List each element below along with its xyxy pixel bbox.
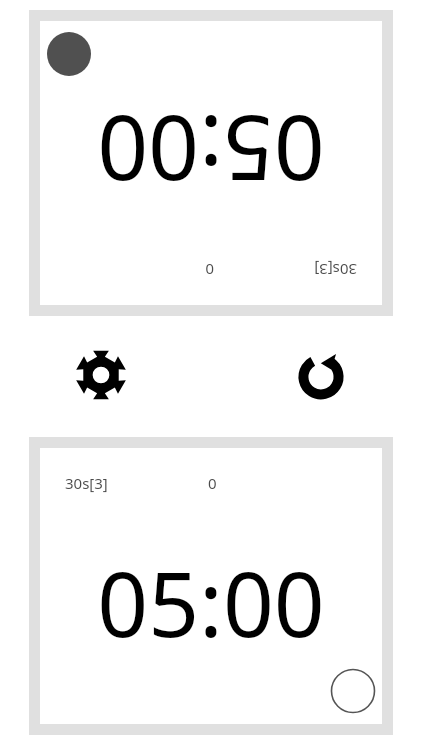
staticText: 0 [205,260,214,280]
staticText: 05:00 [40,542,382,663]
button[interactable]: 30s[3] [40,21,382,305]
button[interactable]: Player indicator [46,31,92,77]
button[interactable]: 30s[3] [40,448,382,724]
button[interactable]: Settings [74,348,128,402]
staticText: 30s[3] [314,260,357,280]
staticText: 0 [208,473,217,493]
button[interactable]: Reset [294,348,348,402]
staticText: 30s[3] [65,473,108,493]
button[interactable]: Player indicator [330,668,376,714]
staticText: 05:00 [40,90,382,211]
